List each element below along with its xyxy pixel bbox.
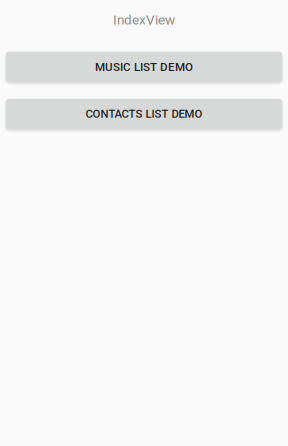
- button[interactable]: MUSIC LIST DEMO: [6, 52, 282, 82]
- staticText: IndexView: [113, 12, 175, 28]
- staticText: MUSIC LIST DEMO: [95, 60, 193, 74]
- button[interactable]: CONTACTS LIST DEMO: [6, 99, 282, 129]
- staticText: CONTACTS LIST DEMO: [85, 107, 202, 121]
